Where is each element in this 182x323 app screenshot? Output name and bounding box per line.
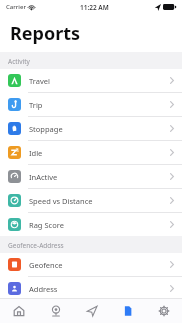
button[interactable]: Trip (0, 93, 182, 116)
button[interactable]: Travel (0, 69, 182, 92)
staticText: Stoppage (29, 124, 63, 134)
button[interactable]: Idle (0, 141, 182, 164)
staticText: Reports (10, 21, 81, 46)
staticText: Idle (29, 148, 43, 158)
button[interactable]: Track (74, 299, 110, 323)
button[interactable]: Places (37, 299, 74, 323)
button[interactable]: Home (0, 299, 37, 323)
button[interactable]: Speed vs Distance (0, 189, 182, 212)
button[interactable]: Settings (146, 299, 182, 323)
button[interactable]: Address (0, 277, 182, 298)
button[interactable]: InActive (0, 165, 182, 188)
button[interactable]: Reports (110, 299, 146, 323)
staticText: Geofence-Address (8, 241, 64, 250)
staticText: Activity (8, 57, 30, 66)
staticText: Address (29, 284, 58, 294)
staticText: Trip (29, 100, 43, 110)
staticText: Rag Score (29, 220, 64, 230)
staticText: Speed vs Distance (29, 196, 93, 206)
staticText: Geofence (29, 260, 63, 270)
staticText: 11:22 AM (80, 3, 109, 12)
button[interactable]: Geofence (0, 253, 182, 276)
button[interactable]: Rag Score (0, 213, 182, 236)
button[interactable]: Stoppage (0, 117, 182, 140)
staticText: InActive (29, 172, 58, 182)
staticText: Travel (29, 76, 50, 86)
staticText: Carrier (6, 3, 26, 11)
